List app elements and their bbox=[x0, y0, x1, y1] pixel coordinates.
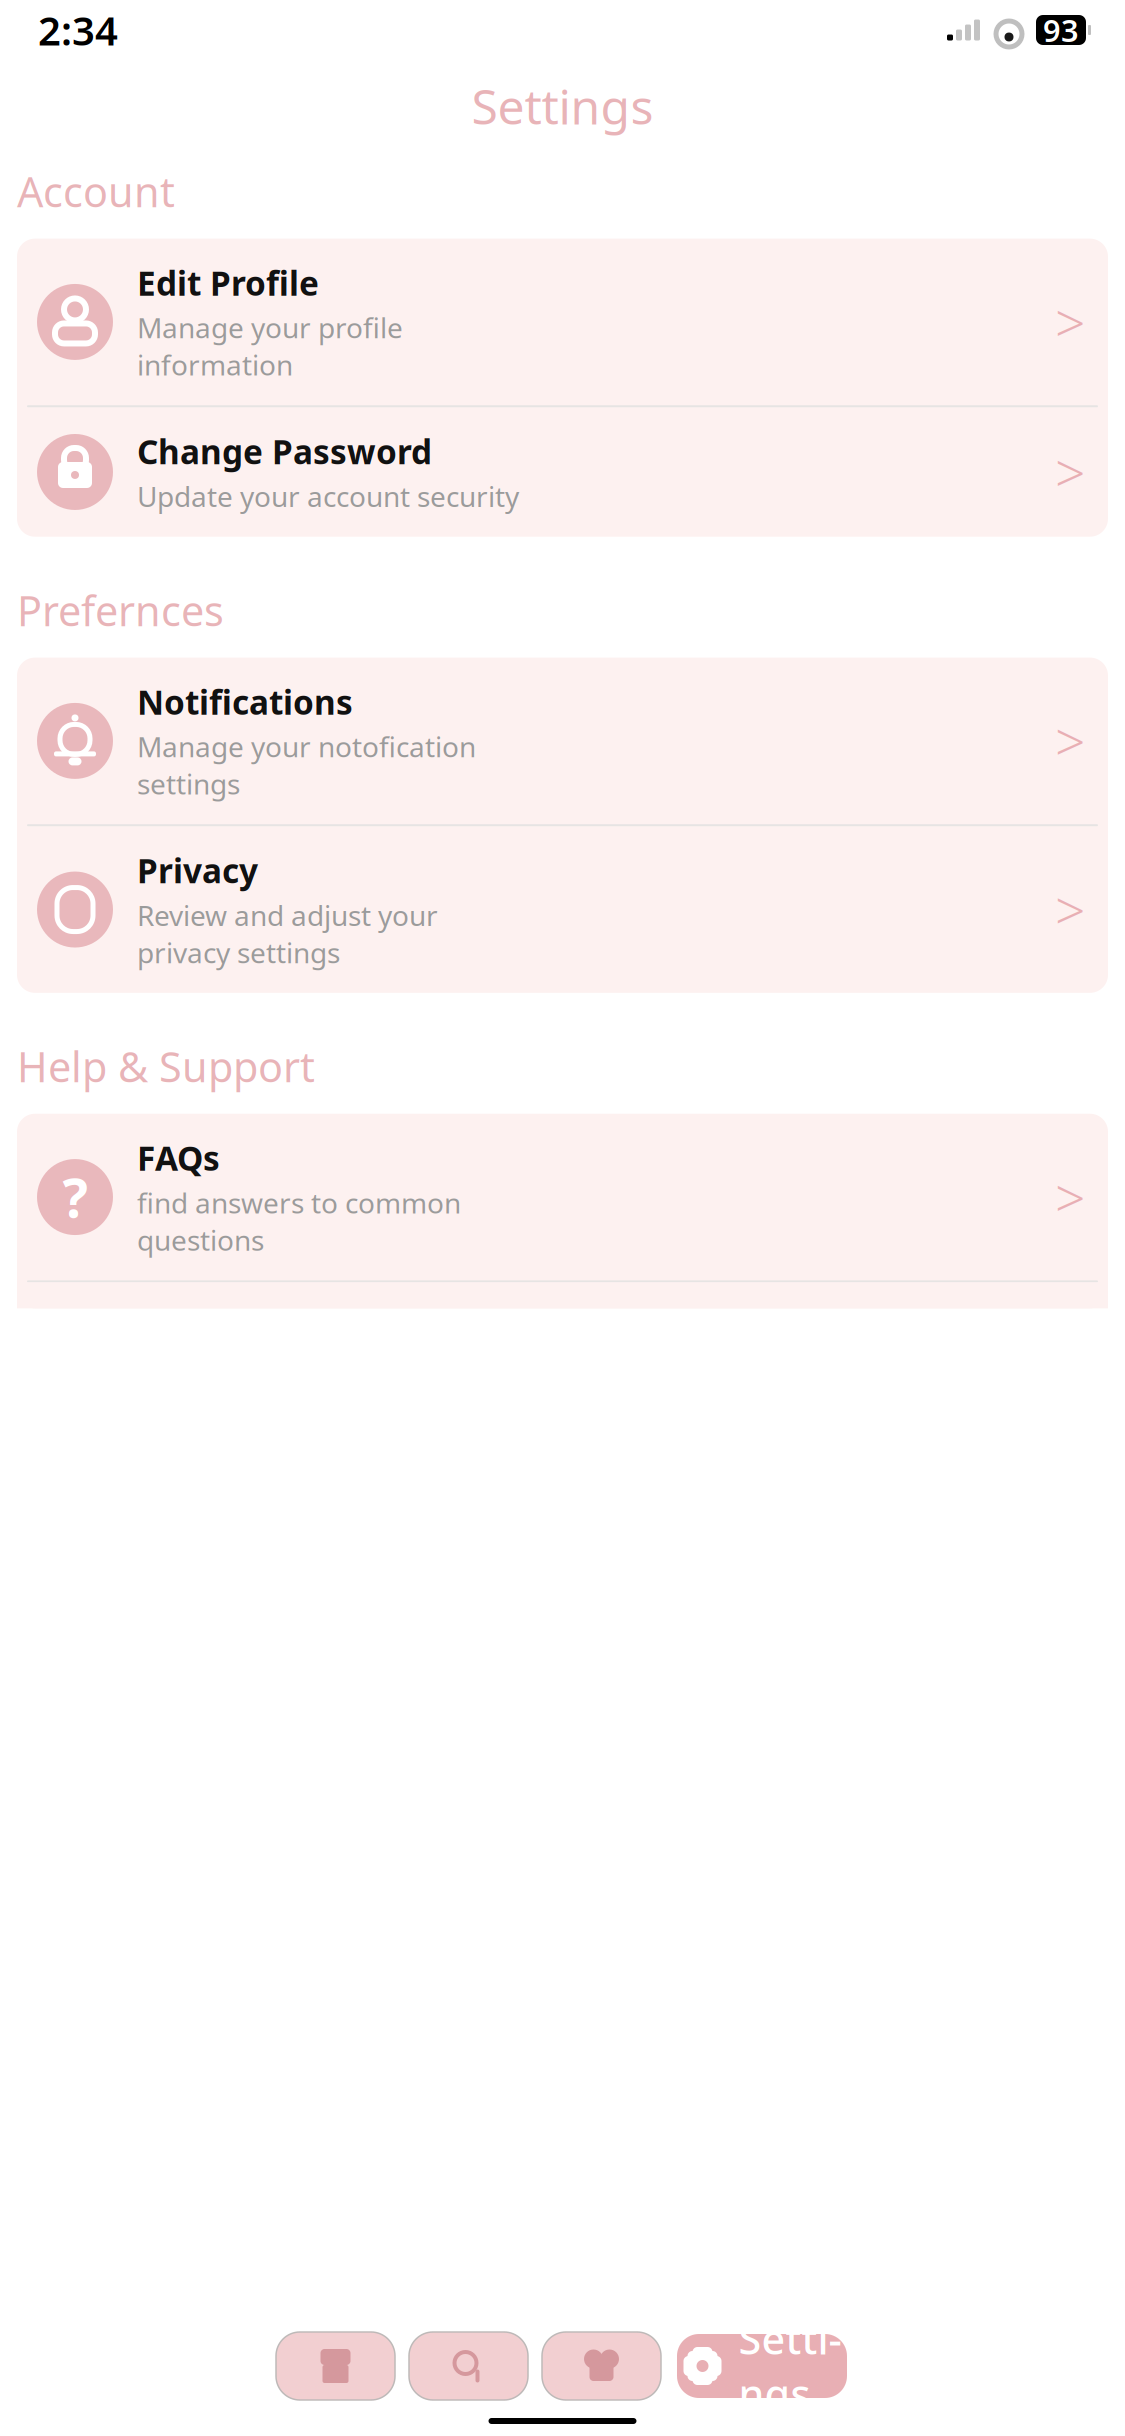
staticText: > bbox=[1055, 705, 1085, 776]
staticText: find answers to common questions bbox=[137, 1184, 461, 1258]
button[interactable]: Settings bbox=[675, 2332, 849, 2400]
button[interactable]: Change Password bbox=[17, 407, 1108, 537]
staticText: Prefernces bbox=[17, 583, 224, 638]
staticText: > bbox=[1055, 874, 1085, 945]
staticText: > bbox=[1055, 286, 1085, 357]
button[interactable]: Search bbox=[409, 2332, 528, 2400]
staticText: Manage your profile information bbox=[137, 309, 403, 383]
button[interactable]: Notifications bbox=[17, 658, 1108, 824]
staticText: > bbox=[1055, 1162, 1085, 1232]
staticText: 2:34 bbox=[38, 3, 118, 56]
button[interactable]: Privacy bbox=[17, 826, 1108, 993]
staticText: Notifications bbox=[137, 680, 353, 724]
button[interactable]: Edit Profile bbox=[17, 239, 1108, 405]
staticText: FAQs bbox=[137, 1136, 220, 1180]
staticText: Help & Support bbox=[17, 1039, 315, 1094]
staticText: Review and adjust your privacy settings bbox=[137, 896, 438, 971]
staticText: Edit Profile bbox=[137, 261, 319, 305]
staticText: ? bbox=[62, 1162, 87, 1232]
button[interactable]: ? bbox=[17, 1114, 1108, 1280]
staticText: Update your account security bbox=[137, 477, 519, 515]
staticText: > bbox=[1055, 437, 1085, 507]
staticText: Manage your notofication settings bbox=[137, 728, 476, 802]
staticText: 93 bbox=[1043, 10, 1079, 50]
staticText: Settings bbox=[471, 74, 653, 138]
button[interactable]: Home bbox=[276, 2332, 395, 2400]
staticText: Change Password bbox=[137, 429, 432, 474]
button[interactable]: Favorites bbox=[542, 2332, 661, 2400]
staticText: Privacy bbox=[137, 848, 258, 892]
staticText: Settings bbox=[738, 2311, 841, 2421]
staticText: Account bbox=[17, 164, 175, 219]
